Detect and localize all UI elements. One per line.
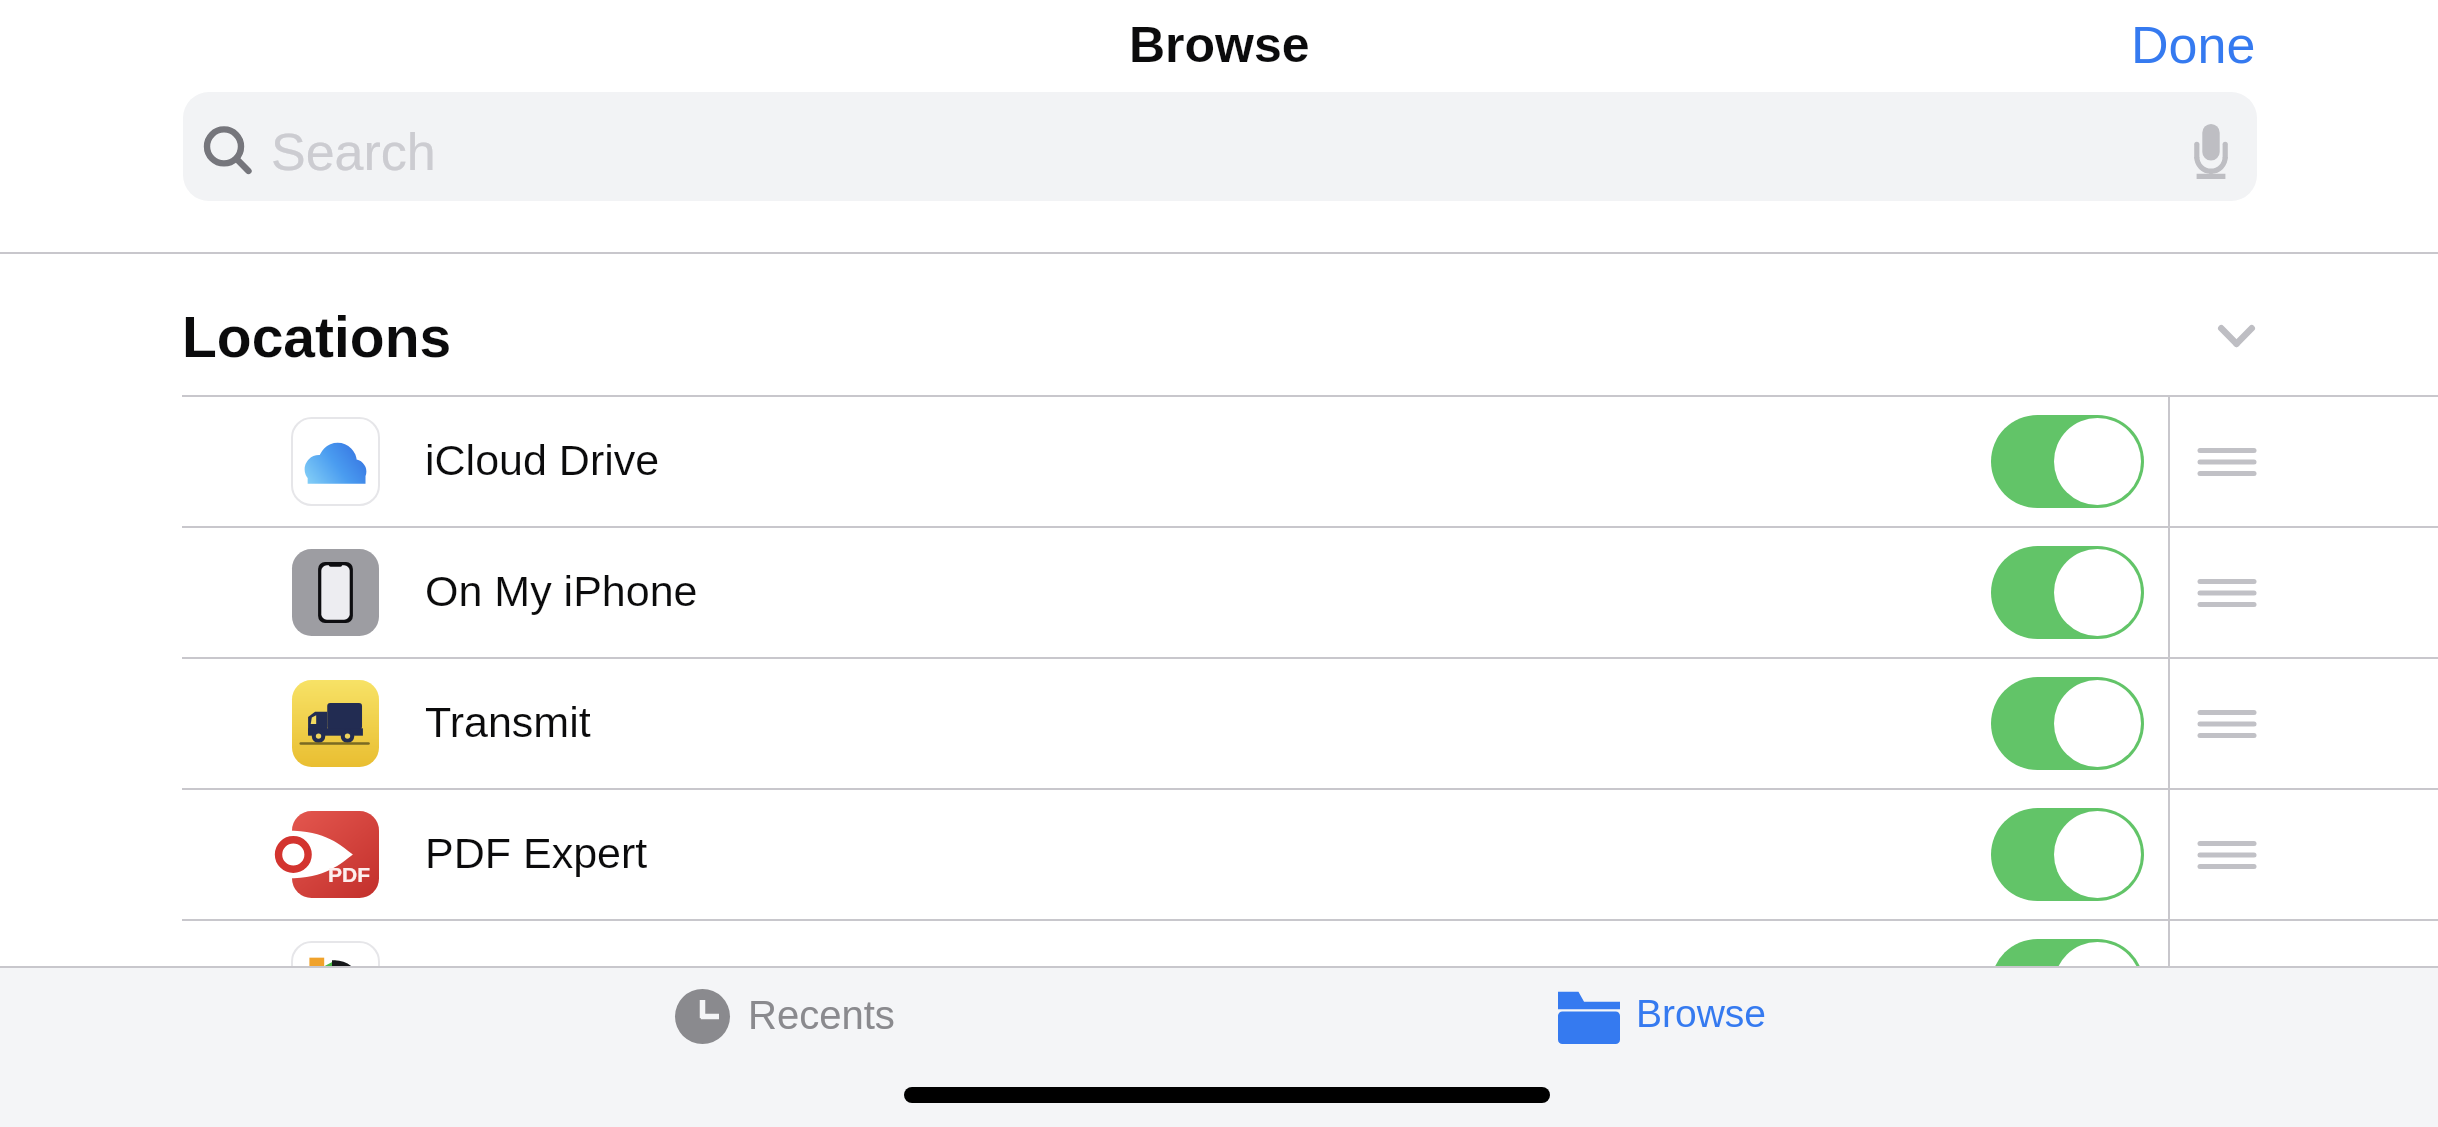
button[interactable]: Dropbox bbox=[0, 921, 2168, 966]
button[interactable]: Collapse Locations bbox=[2191, 291, 2281, 381]
button[interactable]: Reorder bbox=[2170, 790, 2438, 919]
button[interactable]: PDF bbox=[0, 790, 2168, 919]
staticText: Locations bbox=[182, 305, 452, 369]
button[interactable]: Recents bbox=[615, 953, 955, 1080]
button[interactable]: Search bbox=[183, 92, 2257, 201]
button[interactable]: Toggle bbox=[1991, 677, 2144, 770]
staticText: PDF bbox=[328, 863, 370, 886]
button[interactable]: Done bbox=[2101, 6, 2286, 84]
button[interactable]: Reorder bbox=[2170, 397, 2438, 526]
staticText: PDF Expert bbox=[425, 829, 648, 877]
staticText: Browse bbox=[1129, 17, 1310, 73]
button[interactable]: On My iPhone bbox=[0, 528, 2168, 657]
button[interactable]: Toggle bbox=[1991, 415, 2144, 508]
button[interactable]: Transmit bbox=[0, 659, 2168, 788]
button[interactable]: Browse bbox=[1498, 956, 1827, 1074]
button[interactable]: Dictate bbox=[2177, 113, 2245, 181]
button[interactable]: Toggle bbox=[1991, 808, 2144, 901]
staticText: Transmit bbox=[425, 698, 591, 746]
button[interactable]: Reorder bbox=[2170, 659, 2438, 788]
staticText: iCloud Drive bbox=[425, 436, 660, 484]
button[interactable]: Toggle bbox=[1991, 546, 2144, 639]
button[interactable]: Toggle bbox=[1991, 939, 2144, 966]
staticText: Recents bbox=[748, 993, 895, 1038]
staticText: On My iPhone bbox=[425, 567, 698, 615]
staticText: Done bbox=[2131, 16, 2256, 74]
staticText: Search bbox=[271, 123, 436, 181]
staticText: Browse bbox=[1636, 992, 1767, 1036]
button[interactable]: iCloud Drive bbox=[0, 397, 2168, 526]
button[interactable]: Reorder bbox=[2170, 528, 2438, 657]
